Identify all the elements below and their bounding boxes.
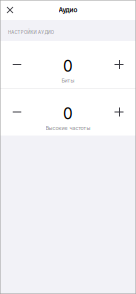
staticText: 0 (63, 104, 73, 123)
button[interactable]: Increase Высокие частоты (102, 88, 136, 135)
button[interactable]: Close (0, 0, 20, 20)
staticText: 0 (63, 57, 73, 76)
staticText: Высокие частоты (45, 125, 90, 131)
staticText: НАСТРОЙКИ АУДИО (8, 30, 54, 35)
button[interactable]: Decrease Высокие частоты (0, 88, 34, 135)
button[interactable]: Decrease Биты (0, 41, 34, 88)
staticText: Биты (61, 77, 74, 84)
staticText: Аудио (58, 6, 77, 14)
button[interactable]: Increase Биты (102, 41, 136, 88)
